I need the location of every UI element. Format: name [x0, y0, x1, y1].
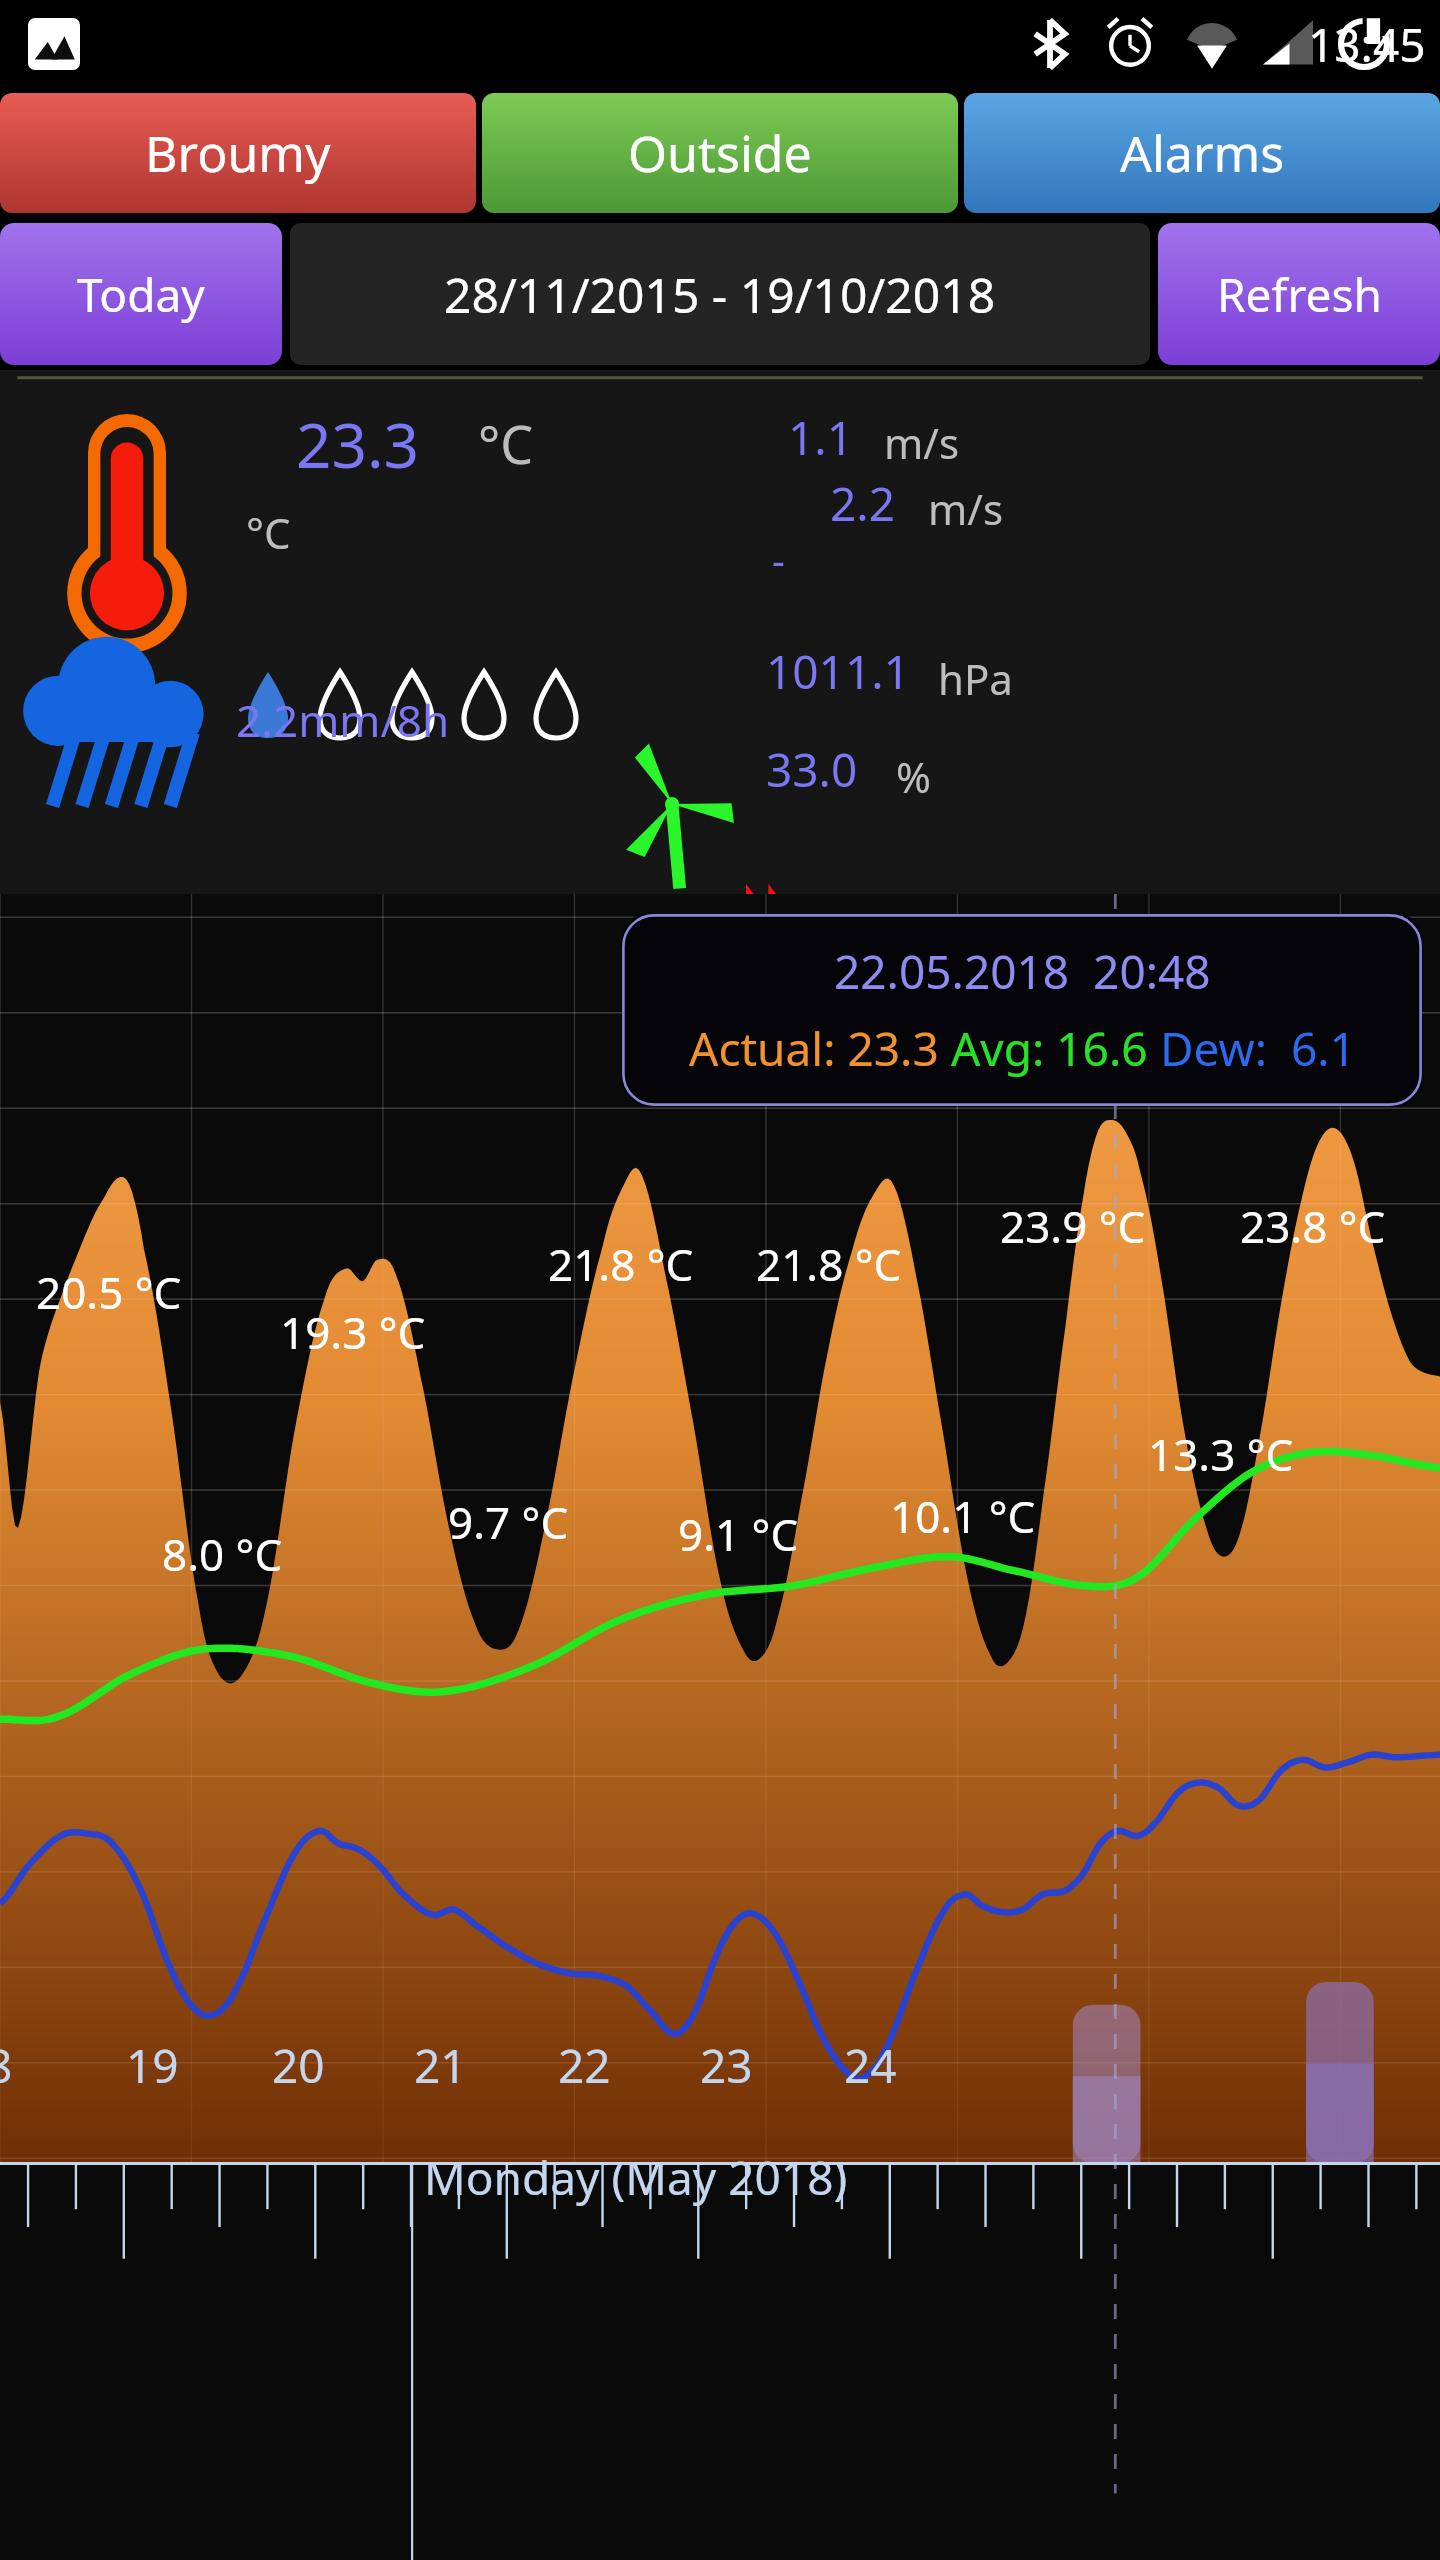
staticText: 20	[272, 2034, 325, 2097]
button[interactable]: Alarms	[964, 93, 1440, 213]
staticText: 1011.1	[766, 640, 910, 703]
staticText: 24	[844, 2034, 897, 2097]
button[interactable]: Refresh	[1158, 223, 1440, 365]
staticText: Outside	[628, 119, 812, 187]
staticText: m/s	[884, 414, 960, 471]
staticText: 23.3	[296, 402, 420, 486]
staticText: Refresh	[1217, 263, 1382, 326]
staticText: 2.2	[830, 472, 895, 535]
staticText: 9.1 °C	[678, 1504, 799, 1564]
staticText: Today	[77, 263, 205, 326]
staticText: Broumy	[145, 119, 331, 187]
button[interactable]: Today	[0, 223, 282, 365]
staticText: 13.3 °C	[1148, 1424, 1294, 1484]
staticText: 8	[0, 2034, 13, 2097]
staticText: 21	[414, 2034, 467, 2097]
staticText: 21.8 °C	[548, 1234, 694, 1294]
staticText: 1.1	[788, 406, 853, 469]
staticText: Dew: 6.1	[1148, 1017, 1356, 1080]
staticText: 19	[126, 2034, 179, 2097]
staticText: 33.0	[766, 738, 858, 801]
staticText: %	[896, 748, 931, 805]
staticText: °C	[478, 408, 534, 479]
staticText: 9.7 °C	[448, 1492, 569, 1552]
staticText: 13:45	[1308, 13, 1426, 76]
staticText: °C	[246, 504, 291, 561]
staticText: 10.1 °C	[890, 1486, 1036, 1546]
staticText: Monday (May 2018)	[424, 2146, 848, 2209]
staticText: 28/11/2015 - 19/10/2018	[444, 262, 996, 327]
staticText: 23.9 °C	[1000, 1196, 1146, 1256]
button[interactable]: 22.05.2018 20:48	[622, 914, 1422, 1106]
staticText: 23.8 °C	[1240, 1196, 1386, 1256]
button[interactable]: Outside	[482, 93, 958, 213]
staticText: Avg: 16.6	[939, 1017, 1148, 1080]
staticText: 21.8 °C	[756, 1234, 902, 1294]
staticText: 19.3 °C	[280, 1302, 426, 1362]
staticText: hPa	[938, 650, 1013, 707]
staticText: Alarms	[1120, 119, 1285, 187]
staticText: Actual: 23.3	[689, 1017, 939, 1080]
staticText: 20.5 °C	[36, 1262, 182, 1322]
staticText: m/s	[928, 480, 1004, 537]
staticText: 8.0 °C	[162, 1524, 283, 1584]
staticText: 22	[558, 2034, 611, 2097]
staticText: 23	[700, 2034, 753, 2097]
button[interactable]: 28/11/2015 - 19/10/2018	[290, 223, 1150, 365]
staticText: -	[772, 532, 785, 586]
button[interactable]: Broumy	[0, 93, 476, 213]
staticText: 22.05.2018 20:48	[834, 940, 1211, 1003]
staticText: 2.2mm/8h	[236, 690, 450, 750]
